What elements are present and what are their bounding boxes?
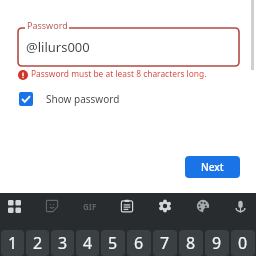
staticText: Password xyxy=(27,19,68,31)
button[interactable]: 5 xyxy=(101,230,125,256)
staticText: 9 xyxy=(212,232,222,254)
staticText: 4 xyxy=(83,232,93,254)
staticText: 5 xyxy=(108,232,118,254)
button[interactable]: Clipboard xyxy=(116,195,138,217)
button[interactable]: Stickers xyxy=(41,195,63,217)
staticText: 1 xyxy=(8,232,18,254)
button[interactable]: GIF xyxy=(79,195,101,217)
staticText: 8 xyxy=(186,232,196,254)
button[interactable]: 4 xyxy=(76,230,99,256)
button[interactable]: 1 xyxy=(1,230,24,256)
staticText: Password must be at least 8 characters l… xyxy=(31,68,207,79)
staticText: Show password xyxy=(46,92,120,106)
button[interactable]: 3 xyxy=(51,230,74,256)
staticText: 7 xyxy=(160,232,170,254)
staticText: 2 xyxy=(33,232,43,254)
button[interactable]: Settings xyxy=(154,195,176,217)
button[interactable]: 0 xyxy=(231,230,255,256)
staticText: @lilurs000 xyxy=(26,38,90,56)
staticText: 3 xyxy=(58,232,68,254)
button[interactable]: 9 xyxy=(205,230,229,256)
staticText: 6 xyxy=(134,232,144,254)
staticText: 0 xyxy=(238,232,248,254)
button[interactable]: Themes xyxy=(192,195,214,217)
staticText: Next xyxy=(201,160,224,174)
staticText: GIF xyxy=(83,201,97,212)
button[interactable]: 2 xyxy=(26,230,49,256)
button[interactable]: 8 xyxy=(179,230,203,256)
button[interactable]: Apps xyxy=(3,195,25,217)
button[interactable]: 7 xyxy=(153,230,177,256)
button[interactable]: 6 xyxy=(127,230,151,256)
button[interactable]: Voice input xyxy=(229,195,251,217)
button[interactable]: Next xyxy=(185,156,240,178)
button[interactable]: Show password xyxy=(19,88,120,110)
